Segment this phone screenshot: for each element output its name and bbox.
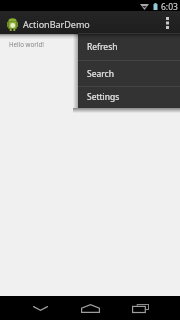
button[interactable]: Refresh [78,33,180,60]
staticText: Search [87,68,114,80]
staticText: Settings [87,91,120,103]
button[interactable]: More options [157,11,177,34]
button[interactable]: Search [78,60,180,87]
staticText: ActionBarDemo [23,18,90,30]
staticText: Refresh [87,41,118,53]
button[interactable]: Recent apps [120,296,160,320]
staticText: Hello world! [9,40,44,48]
staticText: 6:03 [161,1,178,12]
button[interactable]: Home [70,296,110,320]
button[interactable]: Back [20,296,60,320]
button[interactable]: Settings [78,86,180,108]
